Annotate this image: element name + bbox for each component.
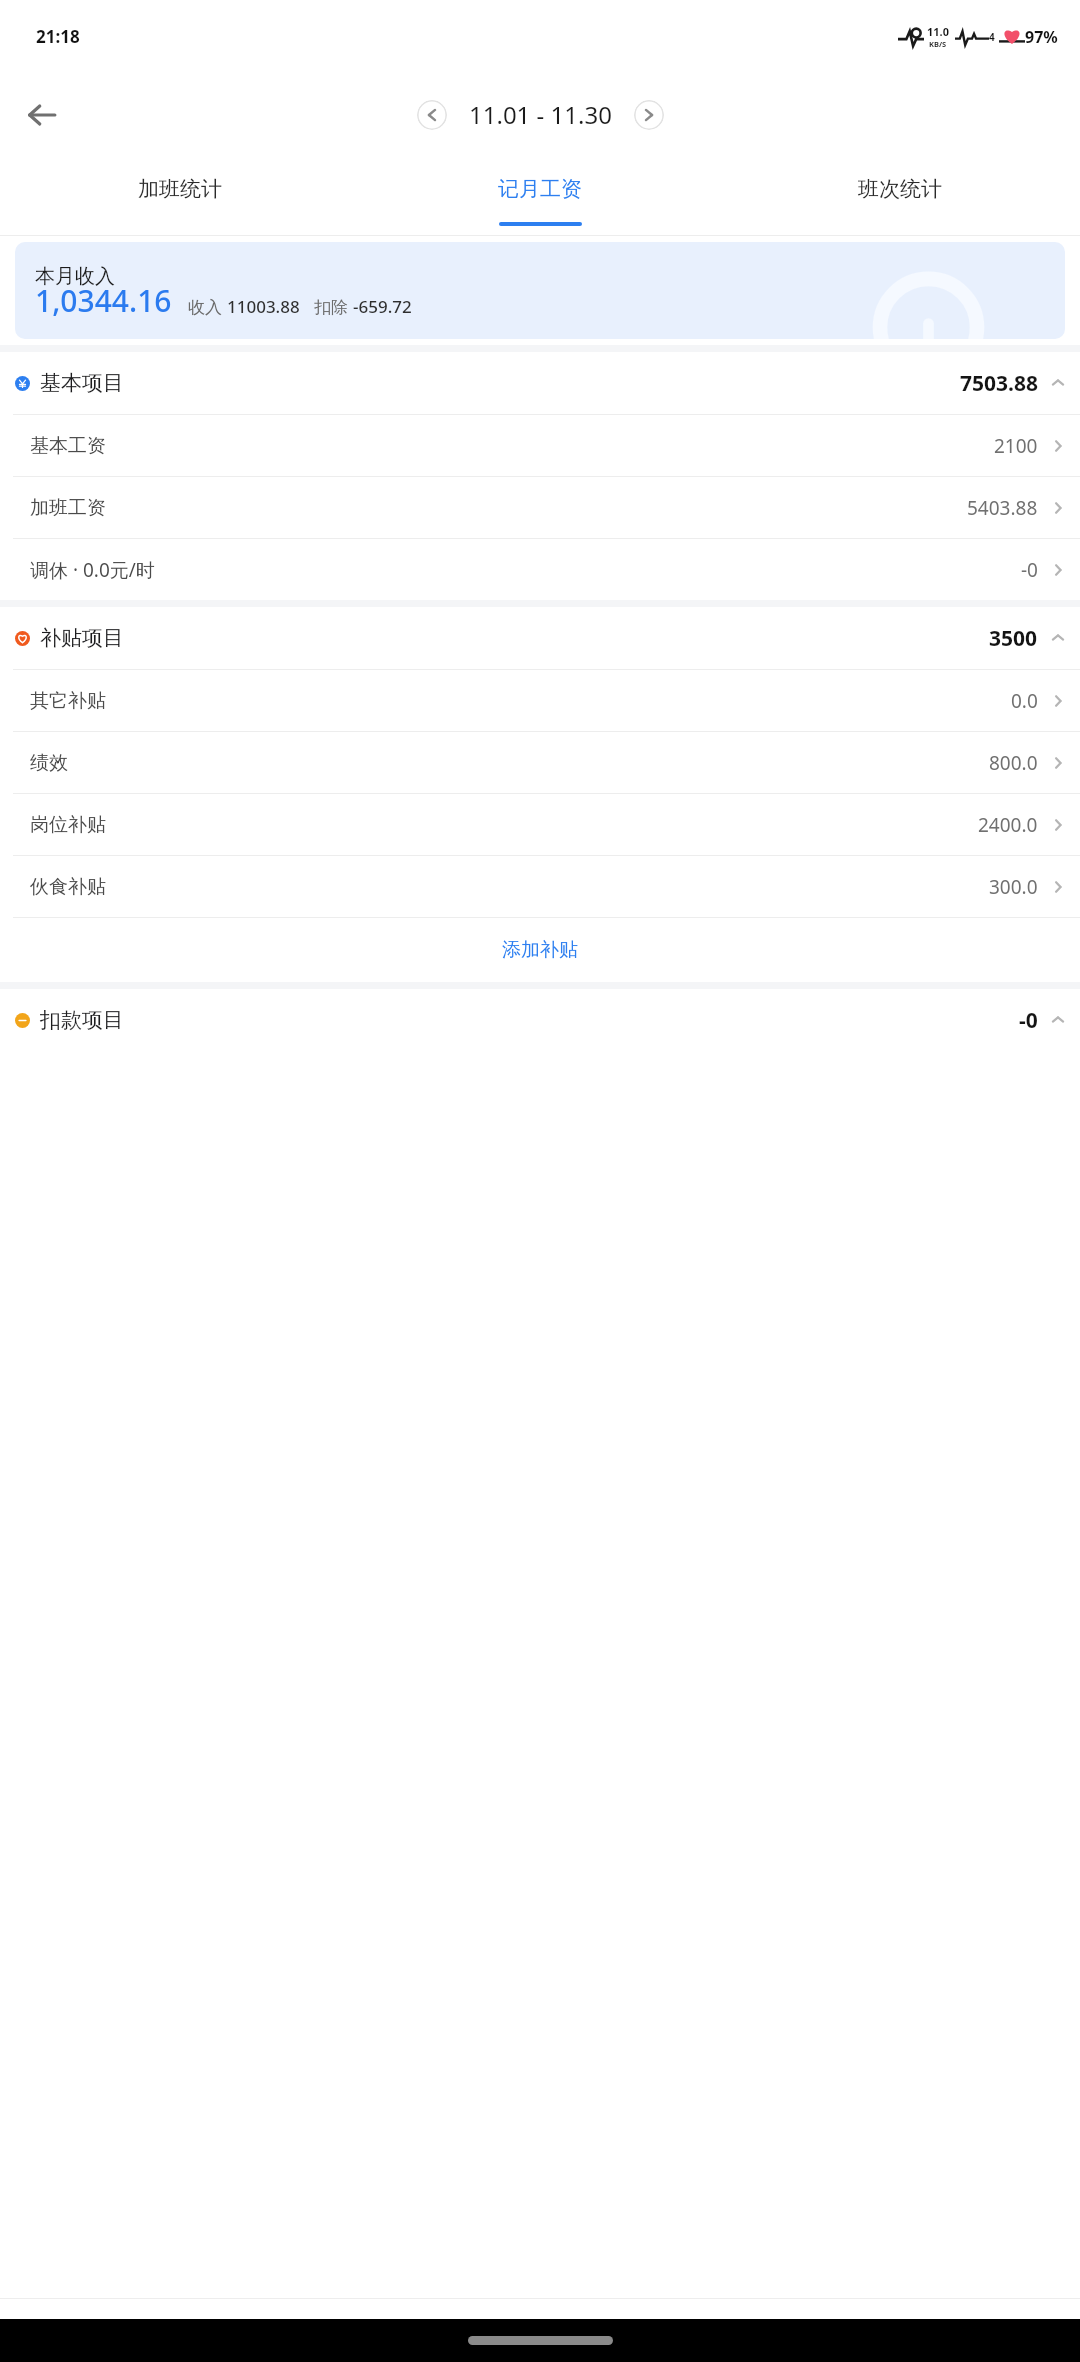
button[interactable]: 加班统计 <box>0 157 360 229</box>
staticText: 11.01 - 11.30 <box>469 98 612 131</box>
button[interactable]: 本月收入 <box>15 242 1065 339</box>
staticText: 扣款项目 <box>40 1007 124 1033</box>
staticText: 班次统计 <box>858 176 942 202</box>
staticText: 伙食补贴 <box>30 875 106 899</box>
staticText: KB/S <box>929 39 947 49</box>
staticText: 补贴项目 <box>40 625 124 651</box>
button[interactable]: 加班工资 <box>0 477 1080 538</box>
staticText: 添加补贴 <box>502 938 578 962</box>
staticText: -659.72 <box>353 295 412 318</box>
button[interactable]: 调休 · 0.0元/时 <box>0 539 1080 600</box>
button[interactable]: Back <box>14 87 70 143</box>
staticText: 1,0344.16 <box>35 280 172 321</box>
button[interactable]: 绩效 <box>0 732 1080 793</box>
button[interactable]: 班次统计 <box>720 157 1080 229</box>
button[interactable]: 伙食补贴 <box>0 856 1080 917</box>
staticText: 记月工资 <box>498 176 582 202</box>
staticText: 21:18 <box>36 25 80 48</box>
staticText: 调休 · 0.0元/时 <box>30 557 155 583</box>
staticText: 97% <box>1025 26 1058 48</box>
button[interactable]: 记月工资 <box>360 157 720 229</box>
button[interactable]: 添加补贴 <box>0 918 1080 982</box>
button[interactable]: 岗位补贴 <box>0 794 1080 855</box>
staticText: 2100 <box>994 433 1038 459</box>
button[interactable]: Previous month <box>417 100 447 130</box>
button[interactable]: 基本工资 <box>0 415 1080 476</box>
staticText: 300.0 <box>989 874 1038 900</box>
staticText: 加班工资 <box>30 496 106 520</box>
staticText: 其它补贴 <box>30 689 106 713</box>
staticText: -0 <box>1021 557 1038 583</box>
staticText: 3500 <box>989 624 1038 653</box>
staticText: 5403.88 <box>967 495 1038 521</box>
staticText: 800.0 <box>989 750 1038 776</box>
staticText: 绩效 <box>30 751 68 775</box>
staticText: 4 <box>989 30 995 44</box>
staticText: 本月收入 <box>35 264 115 289</box>
staticText: 11.0 <box>927 24 949 39</box>
staticText: 基本项目 <box>40 370 124 396</box>
staticText: 加班统计 <box>138 176 222 202</box>
button[interactable]: Next month <box>634 100 664 130</box>
staticText: 扣除 <box>314 295 353 318</box>
staticText: 2400.0 <box>978 812 1038 838</box>
button[interactable]: 扣款项目 <box>0 989 1080 1051</box>
button[interactable]: 其它补贴 <box>0 670 1080 731</box>
button[interactable]: 补贴项目 <box>0 607 1080 669</box>
staticText: 收入 <box>188 295 227 318</box>
staticText: 11003.88 <box>227 295 300 318</box>
staticText: 7503.88 <box>960 369 1038 398</box>
staticText: 岗位补贴 <box>30 813 106 837</box>
staticText: -0 <box>1019 1006 1038 1035</box>
staticText: 基本工资 <box>30 434 106 458</box>
staticText: 0.0 <box>1011 688 1038 714</box>
button[interactable]: 基本项目 <box>0 352 1080 414</box>
